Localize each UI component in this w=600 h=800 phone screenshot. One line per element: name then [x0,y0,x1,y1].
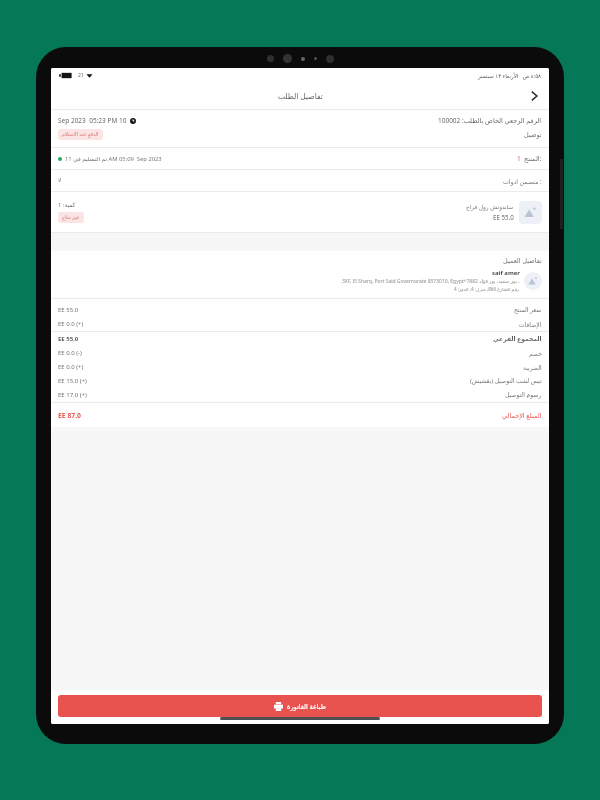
staticText: EE 55.0 [58,335,79,343]
staticText: توصيل [524,131,542,139]
staticText: تم التسليم في 11 AM 05:09 Sep 2023 [65,155,162,163]
staticText: رقم الشارع 866, منزل: 4, الدور: 4 [454,286,520,292]
staticText: ساندوتش رول فراخ [466,203,514,211]
staticText: ٤:٥٨ ص الأربعاء ١٣ سبتمبر [478,72,542,79]
staticText: لا [58,177,62,184]
staticText: المجموع الفرعي [493,335,542,343]
staticText: رسوم التوصيل [505,391,542,399]
staticText: EE 17.0 (+) [58,391,87,399]
staticText: EE 0.0 (+) [58,363,84,371]
staticText: تيس لشب التوصيل (بقشيش) [470,377,542,385]
staticText: saif amer [492,269,520,277]
staticText: EE 15.0 (+) [58,377,87,385]
staticText: EE 87.0 [58,411,81,420]
button[interactable]: غير متاح [58,212,84,223]
staticText: خصم [529,350,542,357]
staticText: تفاصيل الطلب [278,91,323,101]
staticText: EE 0.0 (+) [58,320,84,328]
staticText: الإضافات [519,321,542,328]
staticText: متضمن ادوات : [503,177,542,185]
staticText: سعر المنتج [514,306,542,314]
staticText: EE 0.0 (-) [58,349,82,357]
staticText: EE 55.0 [493,213,514,221]
staticText: غير متاح [62,214,80,221]
staticText: المبلغ الإجمالي [502,411,542,420]
button[interactable]: الدفع عند الاستلام [58,129,103,140]
staticText: EE 55.0 [58,306,79,314]
staticText: 21 [78,72,84,79]
staticText: الدفع عند الاستلام [62,131,99,138]
button[interactable]: Back [524,86,544,106]
staticText: Sep 2023 05:23 PM 10 [58,116,127,125]
staticText: الرقم الرجعي الخاص بالطلب: 100002 [438,116,542,125]
staticText: 3XF, El Sharq, Port Said Governorate 857… [342,278,520,285]
staticText: المنتج: [524,154,542,163]
staticText: طباعة الفاتورة [287,702,326,711]
staticText: كمية: 1 [58,201,76,209]
staticText: تفاصيل العميل [503,256,542,265]
button[interactable]: طباعة الفاتورة [58,695,542,717]
staticText: الضريبة [523,364,542,371]
staticText: 1 [517,154,521,163]
